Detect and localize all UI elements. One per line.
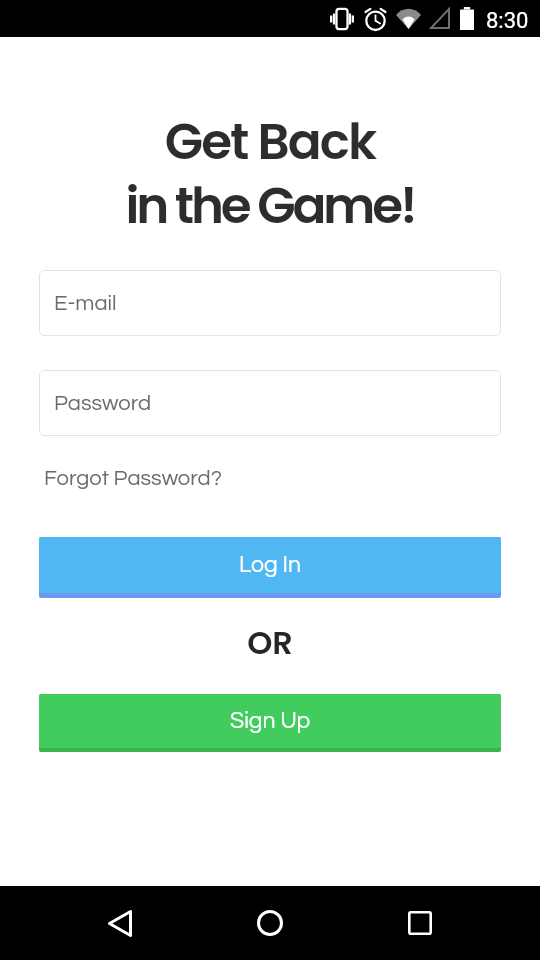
button[interactable]: Password — [39, 370, 501, 436]
staticText: Forgot Password? — [44, 467, 222, 490]
button[interactable]: E-mail — [39, 270, 501, 336]
button[interactable]: Back — [84, 886, 156, 960]
button[interactable]: Home — [234, 886, 306, 960]
staticText: Sign Up — [230, 709, 311, 733]
button[interactable]: Sign Up — [39, 694, 501, 752]
staticText: OR — [0, 620, 540, 665]
staticText: Log In — [239, 553, 302, 577]
button[interactable]: Log In — [39, 537, 501, 598]
button[interactable]: Recent apps — [384, 886, 456, 960]
staticText: in the Game! — [0, 171, 540, 241]
staticText: E-mail — [54, 292, 117, 315]
staticText: Password — [54, 392, 152, 415]
staticText: 8:30 — [486, 8, 529, 34]
button[interactable]: Forgot Password? — [38, 462, 228, 495]
staticText: Get Back — [0, 107, 540, 177]
